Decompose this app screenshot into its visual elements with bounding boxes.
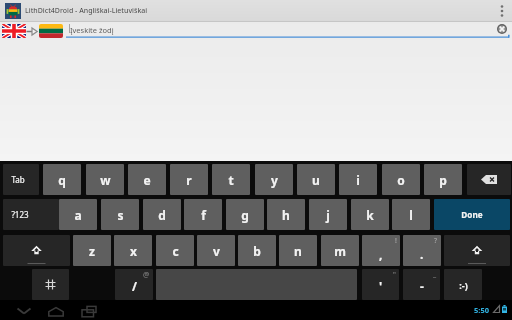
staticText: q [58,172,66,188]
button[interactable]: Source language English [2,24,26,38]
button[interactable]: r [170,164,208,195]
staticText: l [409,207,413,223]
button[interactable]: ? [403,235,441,266]
button[interactable]: j [309,199,347,230]
button[interactable]: a [59,199,97,230]
staticText: a [74,207,82,223]
staticText: Tab [11,174,25,185]
button[interactable]: u [297,164,335,195]
button[interactable]: Backspace [467,164,511,195]
staticText: t [228,172,234,188]
button[interactable]: m [321,235,359,266]
button[interactable]: Tab [3,164,39,195]
button[interactable]: w [86,164,124,195]
button[interactable]: l [392,199,430,230]
staticText: m [334,243,346,259]
staticText: f [201,207,206,223]
button[interactable]: Input method [32,269,69,300]
staticText: k [366,207,374,223]
staticText: Done [461,209,483,220]
staticText: z [89,243,95,259]
button[interactable]: k [351,199,389,230]
staticText: o [397,172,405,188]
button[interactable]: c [156,235,194,266]
button[interactable]: p [424,164,462,195]
button[interactable]: _ [403,269,440,300]
staticText: 5:50 [474,305,489,315]
button[interactable]: @ [115,269,153,300]
staticText: . [420,246,424,262]
staticText: , [379,246,383,262]
staticText: " [393,270,396,280]
staticText: ?123 [11,209,29,220]
button[interactable]: b [238,235,276,266]
staticText: h [282,207,290,223]
button[interactable]: g [226,199,264,230]
button[interactable]: d [143,199,181,230]
button[interactable]: Target language Lithuanian [39,24,63,38]
button[interactable]: y [255,164,293,195]
staticText: ? [434,236,438,246]
button[interactable]: o [382,164,420,195]
staticText: n [294,243,302,259]
button[interactable]: e [128,164,166,195]
staticText: ' [379,278,383,294]
staticText: b [253,243,261,259]
button[interactable]: ! [362,235,400,266]
staticText: y [271,172,278,188]
staticText: Įveskite žodį [70,25,114,35]
staticText: d [158,207,166,223]
staticText: r [186,172,192,188]
staticText: ! [395,236,397,246]
button[interactable]: f [184,199,222,230]
button[interactable]: q [43,164,81,195]
button[interactable]: ?123 [3,199,59,230]
staticText: x [130,243,137,259]
staticText: :-) [459,279,468,291]
button[interactable]: Įveskite žodį [66,22,510,40]
button[interactable]: v [197,235,235,266]
button[interactable]: Done [434,199,510,230]
staticText: v [213,243,220,259]
button[interactable]: Recent apps [77,300,101,320]
button[interactable]: Shift [444,235,510,266]
staticText: - [420,278,424,294]
staticText: u [312,172,320,188]
button[interactable]: s [101,199,139,230]
staticText: j [326,207,330,223]
staticText: s [117,207,124,223]
button[interactable]: Clear text [497,24,507,34]
button[interactable]: Hide keyboard [12,300,36,320]
staticText: _ [433,270,437,280]
button[interactable]: " [362,269,399,300]
staticText: c [172,243,179,259]
staticText: LithDict4Droid - Angliškai-Lietuviškai [25,6,148,16]
staticText: i [356,172,360,188]
button[interactable]: :-) [444,269,482,300]
staticText: g [241,207,249,223]
button[interactable]: z [73,235,111,266]
staticText: e [143,172,151,188]
button[interactable]: h [267,199,305,230]
button[interactable]: n [279,235,317,266]
button[interactable]: x [114,235,152,266]
button[interactable]: Shift [3,235,70,266]
button[interactable]: i [339,164,377,195]
button[interactable]: More options [492,0,512,22]
button[interactable]: Home [44,300,68,320]
button[interactable]: t [212,164,250,195]
staticText: / [132,278,137,294]
staticText: p [439,172,447,188]
staticText: w [100,172,111,188]
staticText: @ [143,270,150,280]
